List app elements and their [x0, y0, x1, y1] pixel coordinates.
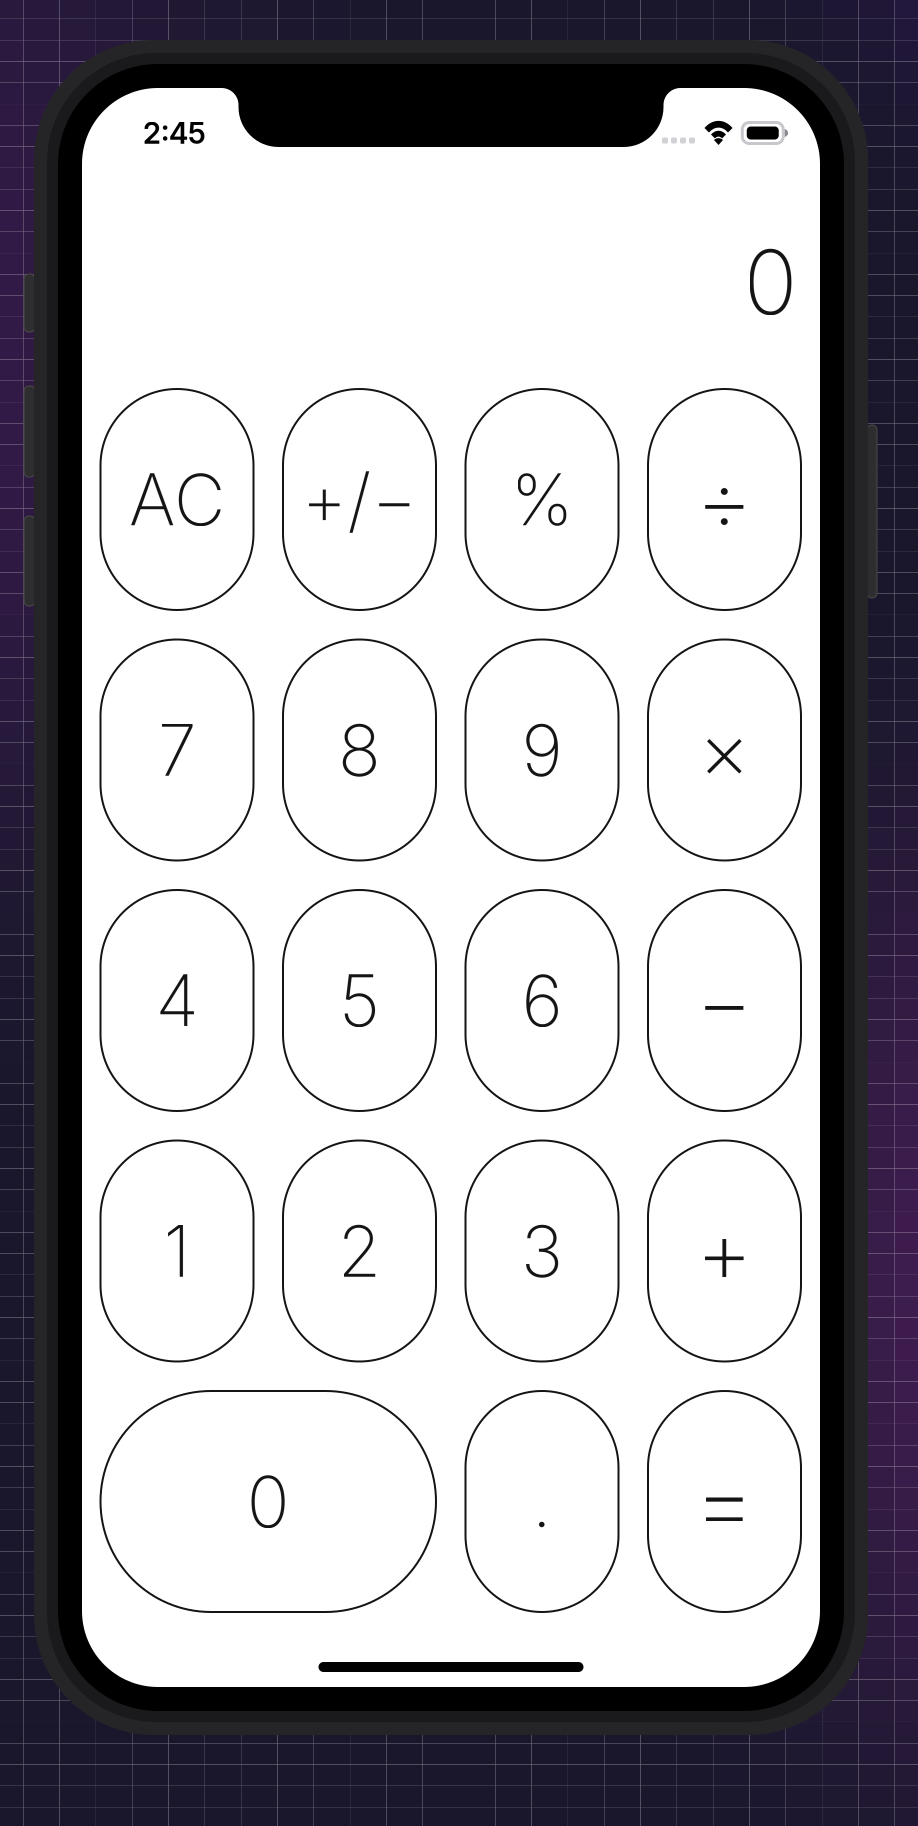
staticText: 9	[521, 707, 562, 793]
staticText: 2	[337, 1208, 381, 1294]
button[interactable]: 2	[283, 1140, 436, 1361]
staticText: 0	[743, 228, 797, 336]
staticText: 3	[521, 1208, 563, 1294]
button[interactable]: %	[465, 389, 618, 610]
staticText: 5	[339, 958, 380, 1043]
staticText: +	[695, 1197, 753, 1305]
staticText: =	[692, 1442, 756, 1561]
staticText: ÷	[695, 445, 753, 554]
staticText: +/−	[301, 457, 417, 542]
staticText: 2:45	[143, 115, 206, 151]
button[interactable]: ×	[648, 639, 801, 860]
button[interactable]: 0	[100, 1391, 436, 1612]
button[interactable]: =	[648, 1391, 801, 1612]
staticText: 4	[155, 958, 198, 1043]
staticText: 1	[163, 1208, 190, 1294]
button[interactable]: +/−	[283, 389, 436, 610]
button[interactable]: 9	[465, 639, 618, 860]
button[interactable]: 7	[100, 639, 253, 860]
button[interactable]: AC	[100, 389, 253, 610]
button[interactable]: +	[648, 1140, 801, 1361]
staticText: %	[510, 457, 573, 542]
staticText: 8	[338, 707, 381, 793]
button[interactable]: 1	[100, 1140, 253, 1361]
button[interactable]: 3	[465, 1140, 618, 1361]
button[interactable]: 6	[465, 890, 618, 1111]
button[interactable]: 4	[100, 890, 253, 1111]
staticText: ×	[698, 702, 750, 798]
staticText: −	[695, 946, 753, 1055]
button[interactable]: ÷	[648, 389, 801, 610]
button[interactable]: .	[465, 1391, 618, 1612]
button[interactable]: 5	[283, 890, 436, 1111]
staticText: 0	[247, 1459, 290, 1544]
staticText: 7	[157, 707, 196, 793]
staticText: AC	[129, 457, 225, 542]
staticText: 6	[521, 958, 562, 1043]
button[interactable]: 8	[283, 639, 436, 860]
button[interactable]: −	[648, 890, 801, 1111]
staticText: .	[532, 1459, 552, 1544]
